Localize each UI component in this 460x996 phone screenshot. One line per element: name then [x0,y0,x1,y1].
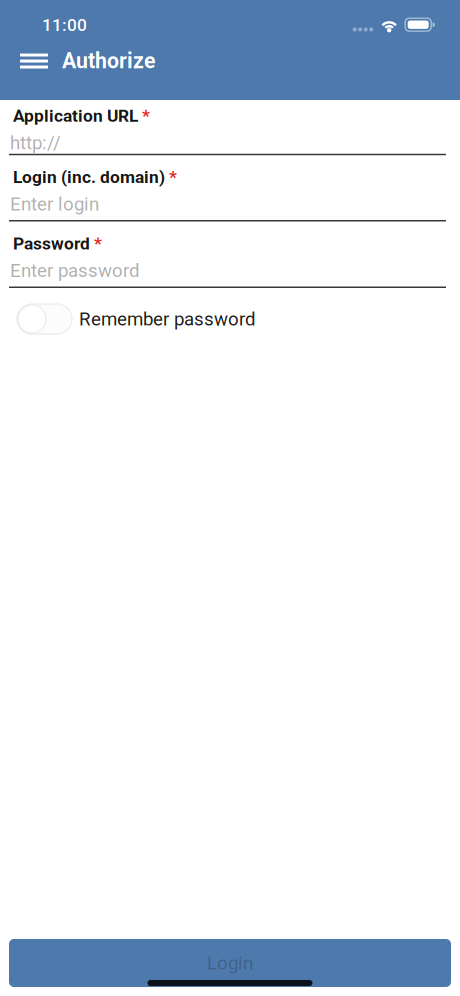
staticText: Enter login [10,193,99,215]
button[interactable]: Remember password [0,288,460,340]
staticText: Login [207,952,253,974]
staticText: http:// [10,132,61,154]
button[interactable]: Login [9,939,451,987]
staticText: Enter password [10,260,140,281]
staticText: Remember password [79,308,256,330]
staticText: Application URL [13,106,142,126]
staticText: * [94,233,102,254]
button[interactable]: Menu [0,44,62,78]
staticText: Password [13,233,94,254]
staticText: Authorize [62,48,156,73]
staticText: * [169,167,177,187]
staticText: 11:00 [42,15,87,35]
staticText: Login (inc. domain) [13,167,169,187]
staticText: * [142,106,150,126]
